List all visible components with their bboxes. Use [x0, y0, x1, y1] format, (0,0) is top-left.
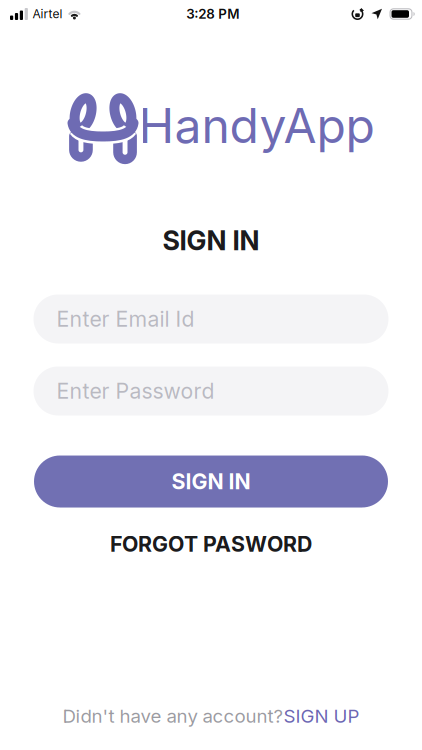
- staticText: Airtel: [32, 7, 62, 21]
- staticText: SIGN UP: [283, 705, 359, 727]
- staticText: Didn't have any account?: [62, 705, 283, 727]
- staticText: SIGN IN: [162, 225, 259, 256]
- button[interactable]: SIGN IN: [34, 455, 388, 507]
- staticText: Enter Email Id: [56, 306, 194, 332]
- button[interactable]: FORGOT PASWORD: [110, 531, 312, 557]
- staticText: SIGN IN: [171, 469, 250, 494]
- staticText: HandyApp: [138, 97, 374, 154]
- button[interactable]: Enter Email Id: [33, 294, 388, 343]
- staticText: FORGOT PASWORD: [110, 531, 312, 557]
- button[interactable]: SIGN UP: [283, 705, 359, 727]
- staticText: 3:28 PM: [186, 6, 239, 22]
- staticText: Enter Password: [56, 378, 214, 404]
- button[interactable]: Enter Password: [33, 366, 388, 415]
